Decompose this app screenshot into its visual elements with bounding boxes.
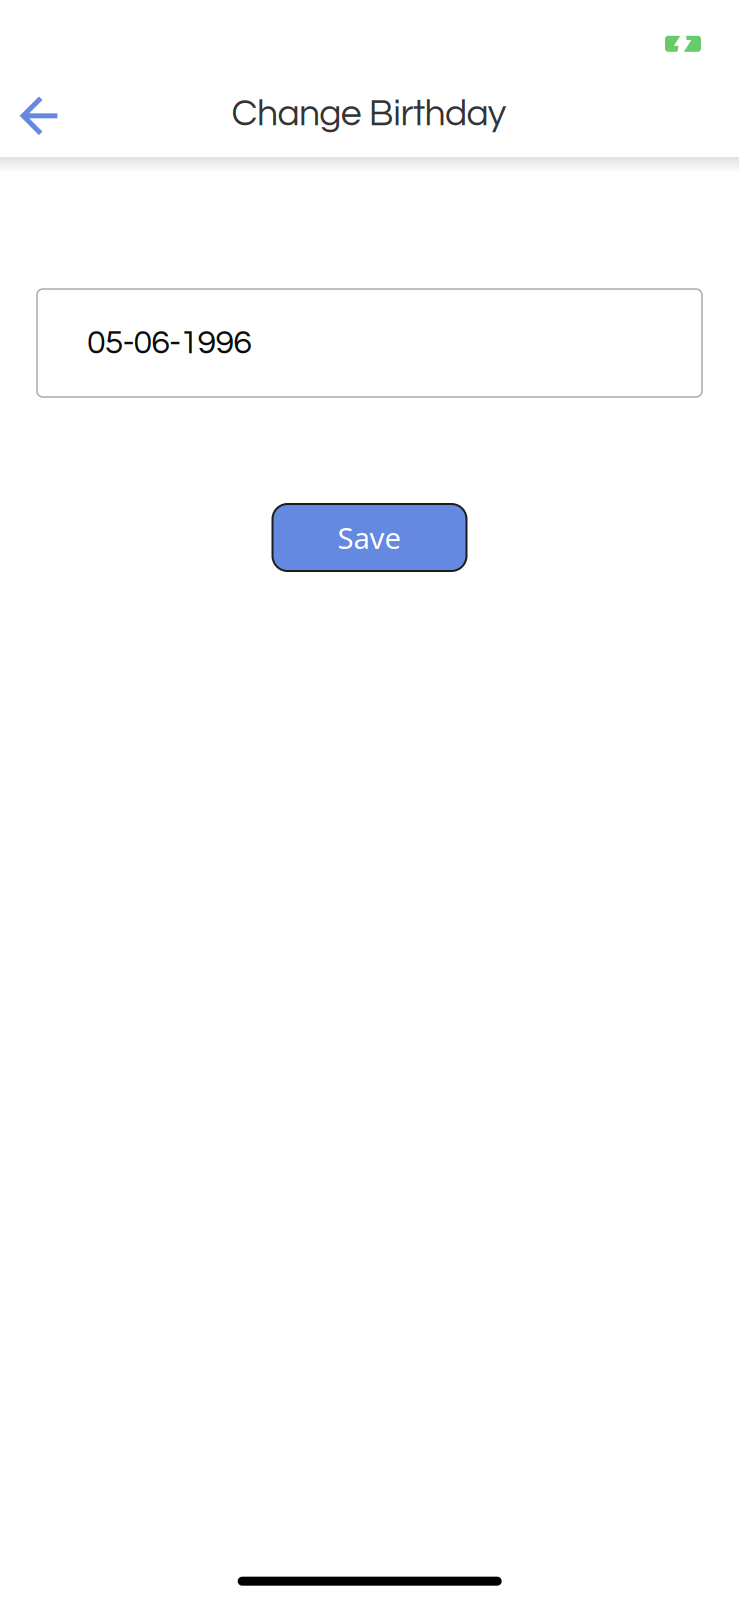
staticText: Save: [337, 518, 401, 557]
button[interactable]: 05-06-1996: [37, 289, 702, 397]
staticText: Change Birthday: [231, 95, 507, 133]
button[interactable]: Back: [1, 78, 77, 154]
button[interactable]: Save: [272, 504, 466, 571]
staticText: 05-06-1996: [87, 325, 252, 360]
